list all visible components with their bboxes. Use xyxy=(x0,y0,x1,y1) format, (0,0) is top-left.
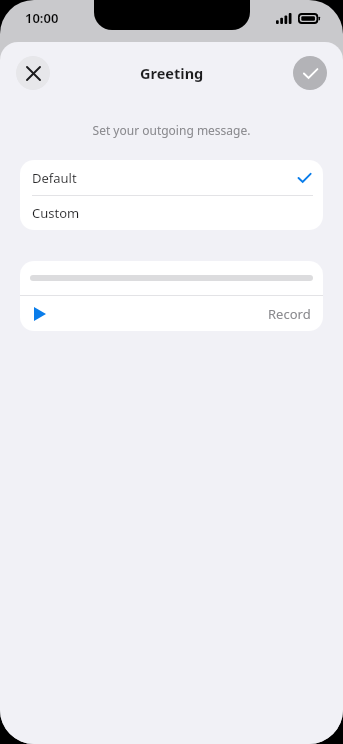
staticText: Greeting xyxy=(140,63,204,83)
button[interactable]: Default xyxy=(20,160,323,195)
button[interactable]: Play xyxy=(20,296,323,331)
other: Play xyxy=(32,306,48,322)
staticText: Default xyxy=(32,169,77,187)
button[interactable]: Close xyxy=(16,56,50,90)
staticText: Record xyxy=(268,305,311,323)
button[interactable]: Custom xyxy=(20,196,323,230)
staticText: Custom xyxy=(32,204,80,222)
staticText: 10:00 xyxy=(25,9,59,27)
staticText: Set your outgoing message. xyxy=(0,122,343,138)
button[interactable]: Done xyxy=(293,56,327,90)
